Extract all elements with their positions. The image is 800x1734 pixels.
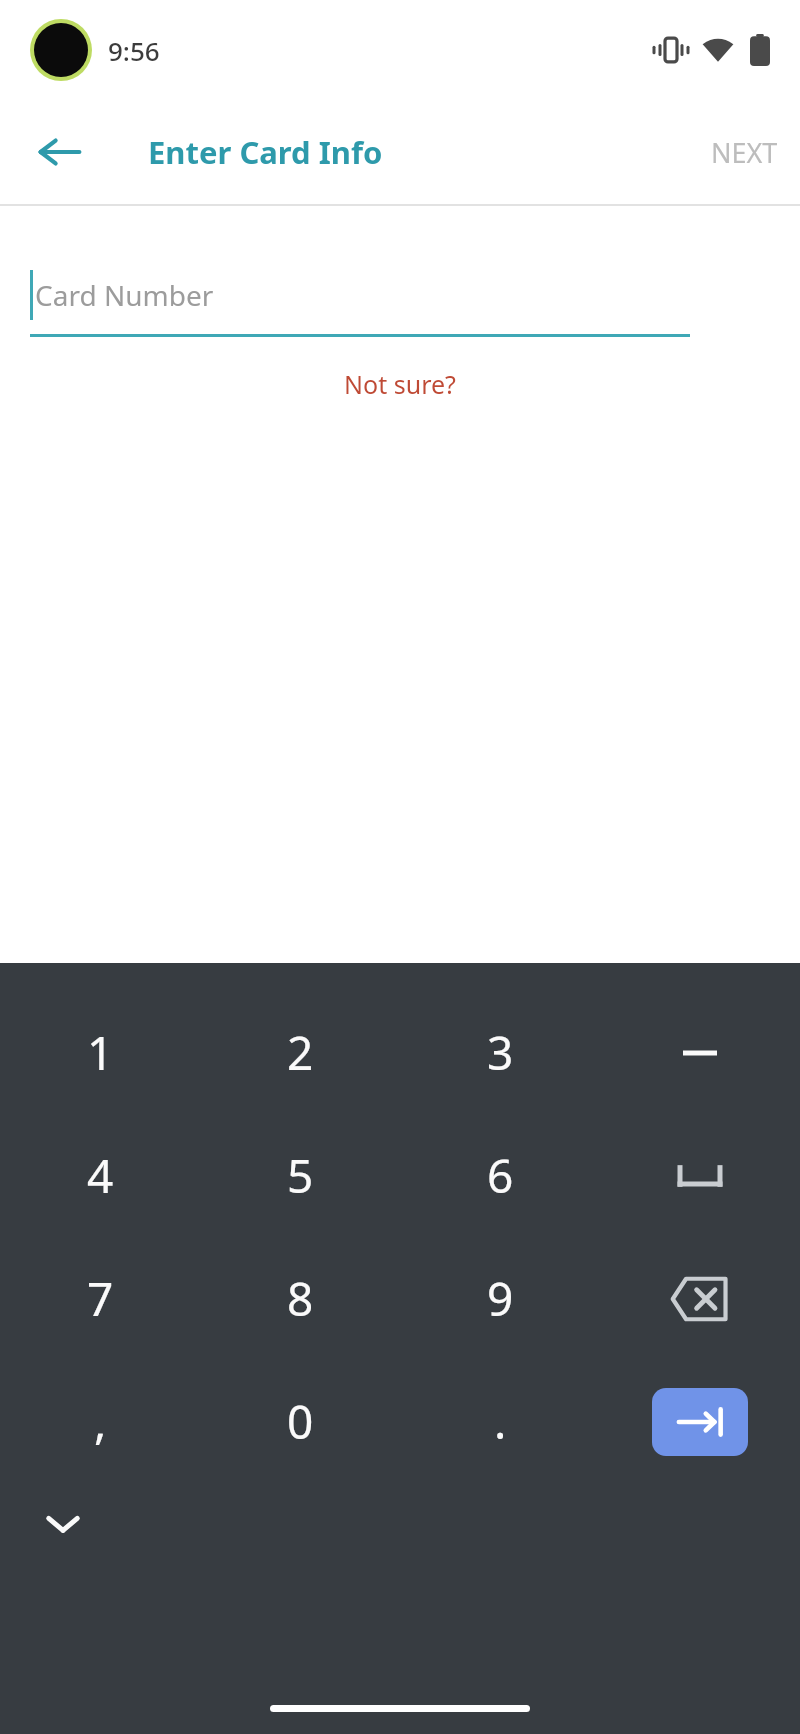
staticText: Enter Card Info: [148, 131, 383, 173]
button[interactable]: Back: [22, 114, 98, 190]
button[interactable]: NEXT: [689, 118, 800, 187]
button[interactable]: 1: [0, 991, 200, 1114]
staticText: 6: [487, 1144, 514, 1207]
button[interactable]: 8: [200, 1237, 400, 1360]
button[interactable]: Not sure?: [328, 361, 472, 407]
staticText: 3: [487, 1021, 514, 1084]
button[interactable]: ,: [0, 1360, 200, 1483]
button[interactable]: 3: [400, 991, 600, 1114]
staticText: 2: [287, 1021, 314, 1084]
button[interactable]: 5: [200, 1114, 400, 1237]
button[interactable]: Card Number: [30, 264, 690, 326]
staticText: Card Number: [35, 276, 214, 314]
staticText: .: [494, 1390, 507, 1453]
staticText: 9:56: [108, 33, 160, 68]
staticText: NEXT: [711, 134, 778, 171]
button[interactable]: Space: [600, 1114, 800, 1237]
button[interactable]: 9: [400, 1237, 600, 1360]
button[interactable]: Backspace: [600, 1237, 800, 1360]
button[interactable]: 4: [0, 1114, 200, 1237]
button[interactable]: .: [400, 1360, 600, 1483]
button[interactable]: 7: [0, 1237, 200, 1360]
button[interactable]: Dash: [600, 991, 800, 1114]
staticText: 0: [287, 1390, 314, 1453]
staticText: 5: [287, 1144, 314, 1207]
staticText: 7: [87, 1267, 114, 1330]
staticText: 1: [87, 1021, 114, 1084]
staticText: Not sure?: [344, 367, 456, 401]
button[interactable]: Hide keyboard: [28, 1489, 98, 1559]
staticText: ,: [94, 1390, 107, 1453]
button[interactable]: Enter: [600, 1360, 800, 1483]
staticText: 9: [487, 1267, 514, 1330]
staticText: 4: [87, 1144, 114, 1207]
button[interactable]: 6: [400, 1114, 600, 1237]
button[interactable]: 2: [200, 991, 400, 1114]
button[interactable]: 0: [200, 1360, 400, 1483]
staticText: 8: [287, 1267, 314, 1330]
